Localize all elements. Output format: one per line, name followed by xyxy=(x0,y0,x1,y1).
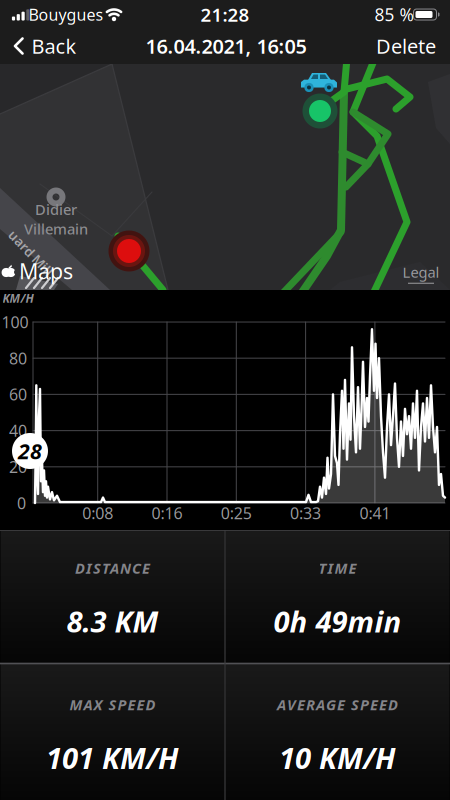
button[interactable]: Open in Maps xyxy=(1,257,73,285)
staticText: 0:16 xyxy=(151,502,182,524)
staticText: 60 xyxy=(9,384,27,405)
staticText: 80 xyxy=(9,348,27,369)
staticText: 10 KM/H xyxy=(279,738,396,777)
staticText: 101 KM/H xyxy=(46,738,179,777)
staticText: 0:41 xyxy=(359,502,390,524)
staticText: Back xyxy=(31,33,76,59)
staticText: 100 xyxy=(1,311,28,333)
staticText: 0:08 xyxy=(82,502,113,524)
button[interactable]: Back xyxy=(13,33,76,59)
staticText: DISTANCE xyxy=(75,558,150,578)
staticText: 20 xyxy=(9,456,27,477)
staticText: 85 % xyxy=(374,3,413,26)
button[interactable]: Delete xyxy=(376,33,436,59)
staticText: 16.04.2021, 16:05 xyxy=(145,33,306,59)
staticText: 40 xyxy=(9,420,27,441)
button[interactable]: Legal xyxy=(402,262,439,284)
staticText: 21:28 xyxy=(200,2,249,27)
staticText: MAX SPEED xyxy=(69,695,155,714)
staticText: 0:33 xyxy=(290,502,321,524)
staticText: TIME xyxy=(318,558,356,578)
staticText: Legal xyxy=(402,262,439,282)
staticText: Bouygues xyxy=(28,4,103,25)
staticText: 28 xyxy=(18,437,42,465)
staticText: 8.3 KM xyxy=(66,602,158,641)
staticText: 0h 49min xyxy=(273,602,401,641)
staticText: 0:25 xyxy=(221,502,252,524)
staticText: KM/H xyxy=(2,290,33,306)
staticText: Didier xyxy=(35,199,77,219)
staticText: uard Mill xyxy=(2,244,60,262)
staticText: Delete xyxy=(376,33,436,59)
staticText: 0 xyxy=(17,492,26,514)
staticText: Maps xyxy=(19,257,73,285)
staticText: AVERAGE SPEED xyxy=(277,695,398,714)
staticText: Villemain xyxy=(24,219,88,238)
